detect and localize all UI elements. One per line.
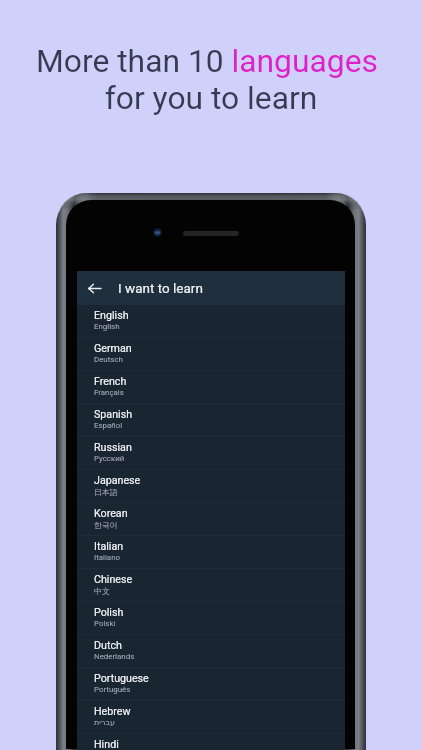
- button[interactable]: Portuguese: [77, 668, 345, 701]
- staticText: Spanish: [94, 408, 133, 421]
- staticText: More than 10 languages: [0, 42, 418, 79]
- button[interactable]: Japanese: [77, 470, 345, 503]
- staticText: Русский: [94, 454, 125, 463]
- staticText: Italiano: [94, 553, 121, 562]
- staticText: Polish: [94, 606, 124, 619]
- button[interactable]: Hebrew: [77, 701, 345, 734]
- staticText: Hindi: [94, 738, 119, 750]
- button[interactable]: English: [77, 305, 345, 338]
- staticText: French: [94, 375, 127, 388]
- button[interactable]: Hindi: [77, 734, 345, 750]
- staticText: Italian: [94, 540, 124, 553]
- staticText: Russian: [94, 441, 132, 454]
- staticText: Polski: [94, 619, 116, 628]
- staticText: Hebrew: [94, 705, 131, 718]
- staticText: Portuguese: [94, 672, 149, 685]
- button[interactable]: Korean: [77, 503, 345, 536]
- staticText: for you to learn: [0, 79, 422, 116]
- staticText: Dutch: [94, 639, 122, 652]
- button[interactable]: Polish: [77, 602, 345, 635]
- staticText: Nederlands: [94, 652, 135, 661]
- staticText: 日本語: [94, 487, 118, 497]
- button[interactable]: Spanish: [77, 404, 345, 437]
- button[interactable]: Italian: [77, 536, 345, 569]
- staticText: I want to learn: [118, 280, 203, 296]
- button[interactable]: German: [77, 338, 345, 371]
- staticText: German: [94, 342, 132, 355]
- staticText: English: [94, 309, 129, 322]
- staticText: עברית: [94, 718, 115, 727]
- button[interactable]: Dutch: [77, 635, 345, 668]
- staticText: English: [94, 322, 120, 331]
- staticText: Español: [94, 421, 123, 430]
- staticText: Deutsch: [94, 355, 123, 364]
- button[interactable]: Chinese: [77, 569, 345, 602]
- button[interactable]: Back: [77, 271, 111, 305]
- staticText: 한국어: [94, 520, 118, 530]
- button[interactable]: French: [77, 371, 345, 404]
- staticText: Chinese: [94, 573, 133, 586]
- staticText: Português: [94, 685, 131, 694]
- staticText: Korean: [94, 507, 128, 520]
- button[interactable]: Russian: [77, 437, 345, 470]
- staticText: Français: [94, 388, 124, 397]
- staticText: 中文: [94, 586, 110, 596]
- staticText: Japanese: [94, 474, 141, 487]
